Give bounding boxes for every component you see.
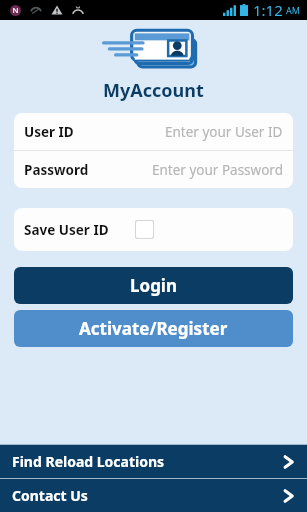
staticText: Find Reload Locations	[12, 452, 165, 471]
staticText: Login	[130, 274, 178, 297]
button[interactable]: Contact Us	[0, 479, 307, 512]
staticText: Enter your User ID	[165, 123, 283, 141]
button[interactable]: User ID	[14, 113, 293, 150]
button[interactable]: Find Reload Locations	[0, 445, 307, 478]
button[interactable]: Activate/Register	[14, 310, 293, 347]
staticText: Password	[24, 161, 89, 179]
staticText: Contact Us	[12, 486, 88, 505]
button[interactable]: Login	[14, 267, 293, 304]
staticText: User ID	[24, 123, 74, 141]
staticText: MyAccount	[103, 78, 204, 103]
other: Save User ID checkbox	[136, 221, 153, 238]
staticText: 1:12	[253, 0, 283, 20]
button[interactable]: Save User ID	[14, 208, 293, 251]
staticText: Save User ID	[24, 221, 109, 239]
staticText: Enter your Password	[152, 161, 283, 179]
button[interactable]: Password	[14, 151, 293, 188]
staticText: Activate/Register	[79, 317, 228, 340]
staticText: AM	[286, 4, 300, 16]
